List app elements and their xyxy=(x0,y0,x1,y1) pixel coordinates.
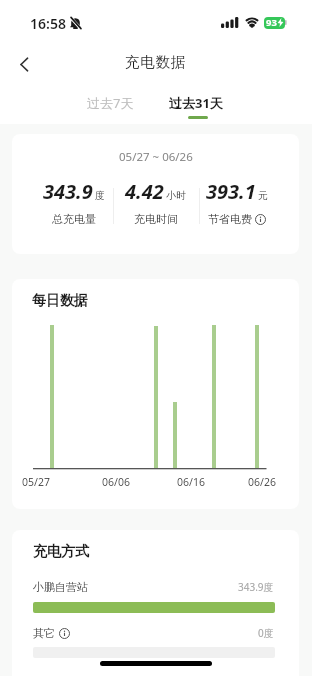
staticText: 06/06 xyxy=(102,475,130,489)
button[interactable]: 过去31天 xyxy=(166,88,226,118)
staticText: 度 xyxy=(95,189,105,202)
staticText: 充电数据 xyxy=(125,53,187,71)
staticText: 16:58 xyxy=(30,14,66,33)
button[interactable]: 小鹏自营站 xyxy=(33,580,274,594)
staticText: 05/27 ~ 06/26 xyxy=(119,149,193,165)
staticText: 06/26 xyxy=(248,475,276,489)
staticText: 总充电量 xyxy=(52,212,96,226)
staticText: 充电方式 xyxy=(33,543,89,561)
staticText: 93 xyxy=(266,16,277,29)
staticText: 元 xyxy=(258,189,268,202)
button[interactable]: 其它 xyxy=(33,626,274,640)
button[interactable] xyxy=(8,48,40,80)
staticText: 小鹏自营站 xyxy=(33,580,88,594)
staticText: 充电时间 xyxy=(134,212,178,226)
staticText: 小时 xyxy=(166,189,186,202)
staticText: 06/16 xyxy=(177,475,205,489)
staticText: 343.9度 xyxy=(238,580,274,594)
staticText: 其它 xyxy=(33,626,55,640)
staticText: 343.9 xyxy=(43,178,93,205)
staticText: 过去31天 xyxy=(169,94,223,112)
staticText: 节省电费 xyxy=(208,212,252,226)
staticText: 每日数据 xyxy=(32,292,88,310)
staticText: 过去7天 xyxy=(87,94,134,112)
staticText: 05/27 xyxy=(22,475,50,489)
staticText: 393.1 xyxy=(206,178,256,205)
staticText: 4.42 xyxy=(125,178,164,205)
staticText: 0度 xyxy=(258,626,274,640)
button[interactable]: 过去7天 xyxy=(80,88,140,118)
